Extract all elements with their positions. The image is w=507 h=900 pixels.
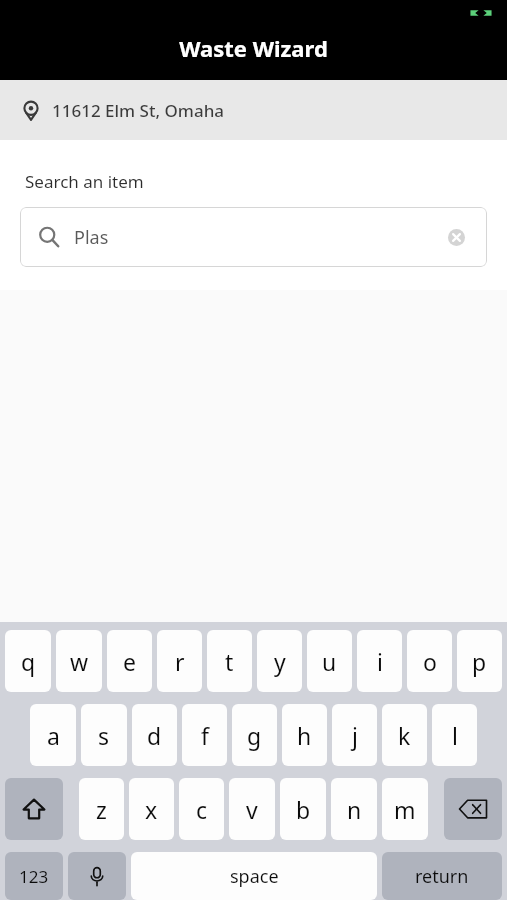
- button[interactable]: Clear search: [443, 224, 469, 250]
- button[interactable]: n: [331, 778, 377, 840]
- staticText: 123: [19, 865, 49, 888]
- staticText: space: [230, 864, 279, 889]
- staticText: p: [472, 646, 487, 677]
- staticText: g: [247, 720, 262, 751]
- staticText: v: [246, 794, 258, 825]
- button[interactable]: t: [207, 630, 252, 692]
- staticText: q: [21, 646, 36, 677]
- staticText: y: [274, 646, 286, 677]
- staticText: n: [347, 794, 362, 825]
- button[interactable]: i: [357, 630, 402, 692]
- staticText: h: [297, 720, 312, 751]
- button[interactable]: Plas: [20, 207, 487, 267]
- button[interactable]: Shift: [5, 778, 63, 840]
- staticText: Plas: [74, 225, 443, 250]
- button[interactable]: c: [179, 778, 224, 840]
- staticText: e: [123, 646, 136, 677]
- button[interactable]: a: [30, 704, 76, 766]
- button[interactable]: 123: [5, 852, 63, 900]
- staticText: z: [96, 794, 107, 825]
- button[interactable]: q: [5, 630, 51, 692]
- staticText: return: [415, 864, 469, 889]
- staticText: a: [47, 720, 60, 751]
- button[interactable]: l: [432, 704, 477, 766]
- button[interactable]: Backspace: [444, 778, 502, 840]
- staticText: u: [322, 646, 337, 677]
- staticText: t: [225, 646, 234, 677]
- staticText: j: [352, 720, 358, 751]
- button[interactable]: s: [81, 704, 127, 766]
- staticText: Waste Wizard: [179, 33, 328, 63]
- staticText: i: [377, 646, 383, 677]
- button[interactable]: f: [182, 704, 227, 766]
- button[interactable]: h: [282, 704, 327, 766]
- button[interactable]: y: [257, 630, 302, 692]
- button[interactable]: k: [382, 704, 427, 766]
- staticText: d: [147, 720, 162, 751]
- staticText: s: [98, 720, 110, 751]
- button[interactable]: b: [280, 778, 326, 840]
- button[interactable]: v: [229, 778, 275, 840]
- button[interactable]: g: [232, 704, 277, 766]
- staticText: b: [296, 794, 311, 825]
- button[interactable]: w: [56, 630, 102, 692]
- staticText: k: [398, 720, 411, 751]
- staticText: 11612 Elm St, Omaha: [52, 99, 225, 122]
- button[interactable]: x: [129, 778, 174, 840]
- button[interactable]: space: [131, 852, 377, 900]
- staticText: x: [145, 794, 158, 825]
- button[interactable]: Voice input: [68, 852, 126, 900]
- button[interactable]: r: [157, 630, 202, 692]
- staticText: r: [175, 646, 185, 677]
- staticText: w: [70, 646, 89, 677]
- button[interactable]: u: [307, 630, 352, 692]
- staticText: o: [423, 646, 437, 677]
- staticText: f: [201, 720, 209, 751]
- button[interactable]: m: [382, 778, 428, 840]
- staticText: l: [452, 720, 458, 751]
- button[interactable]: j: [332, 704, 377, 766]
- staticText: c: [196, 794, 208, 825]
- staticText: Search an item: [25, 170, 144, 193]
- button[interactable]: z: [79, 778, 124, 840]
- button[interactable]: o: [407, 630, 452, 692]
- button[interactable]: return: [382, 852, 502, 900]
- button[interactable]: 11612 Elm St, Omaha: [0, 80, 507, 140]
- button[interactable]: e: [107, 630, 152, 692]
- button[interactable]: d: [132, 704, 177, 766]
- button[interactable]: p: [457, 630, 502, 692]
- staticText: m: [394, 794, 416, 825]
